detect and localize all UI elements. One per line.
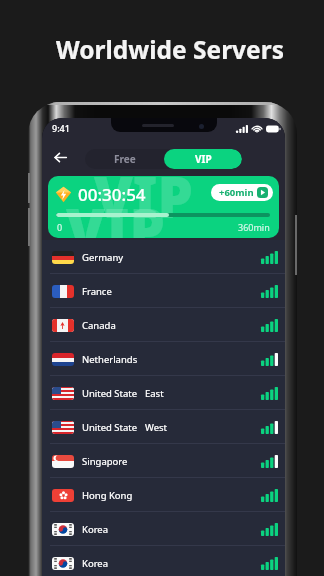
- staticText: West: [145, 421, 167, 434]
- staticText: 00:30:54: [78, 183, 146, 206]
- button[interactable]: Germany: [42, 240, 285, 274]
- staticText: Canada: [82, 319, 116, 332]
- staticText: +60min: [219, 186, 254, 199]
- staticText: United State: [82, 387, 138, 400]
- button[interactable]: Hong Kong: [42, 478, 285, 512]
- button[interactable]: VIP: [164, 149, 242, 169]
- button[interactable]: +60min: [211, 184, 273, 201]
- button[interactable]: United State: [42, 410, 285, 444]
- staticText: Worldwide Servers: [56, 33, 284, 66]
- staticText: VIP: [94, 176, 193, 220]
- staticText: VIP: [66, 190, 165, 238]
- staticText: Singapore: [82, 455, 128, 468]
- staticText: VIP: [195, 152, 212, 166]
- staticText: 0: [57, 221, 63, 233]
- staticText: 9:41: [52, 122, 70, 134]
- staticText: Free: [114, 152, 136, 166]
- staticText: Korea: [82, 557, 109, 570]
- button[interactable]: Korea: [42, 546, 285, 576]
- button[interactable]: France: [42, 274, 285, 308]
- staticText: Hong Kong: [82, 489, 133, 502]
- staticText: France: [82, 285, 112, 298]
- button[interactable]: Singapore: [42, 444, 285, 478]
- staticText: East: [145, 387, 164, 400]
- button[interactable]: Back: [48, 145, 72, 169]
- staticText: United State: [82, 421, 138, 434]
- staticText: Netherlands: [82, 353, 138, 366]
- button[interactable]: Netherlands: [42, 342, 285, 376]
- button[interactable]: Korea: [42, 512, 285, 546]
- button[interactable]: Free: [85, 149, 164, 169]
- button[interactable]: VIP: [48, 176, 279, 238]
- staticText: Germany: [82, 251, 124, 264]
- staticText: 360min: [238, 221, 270, 233]
- button[interactable]: United State: [42, 376, 285, 410]
- staticText: Korea: [82, 523, 109, 536]
- button[interactable]: Canada: [42, 308, 285, 342]
